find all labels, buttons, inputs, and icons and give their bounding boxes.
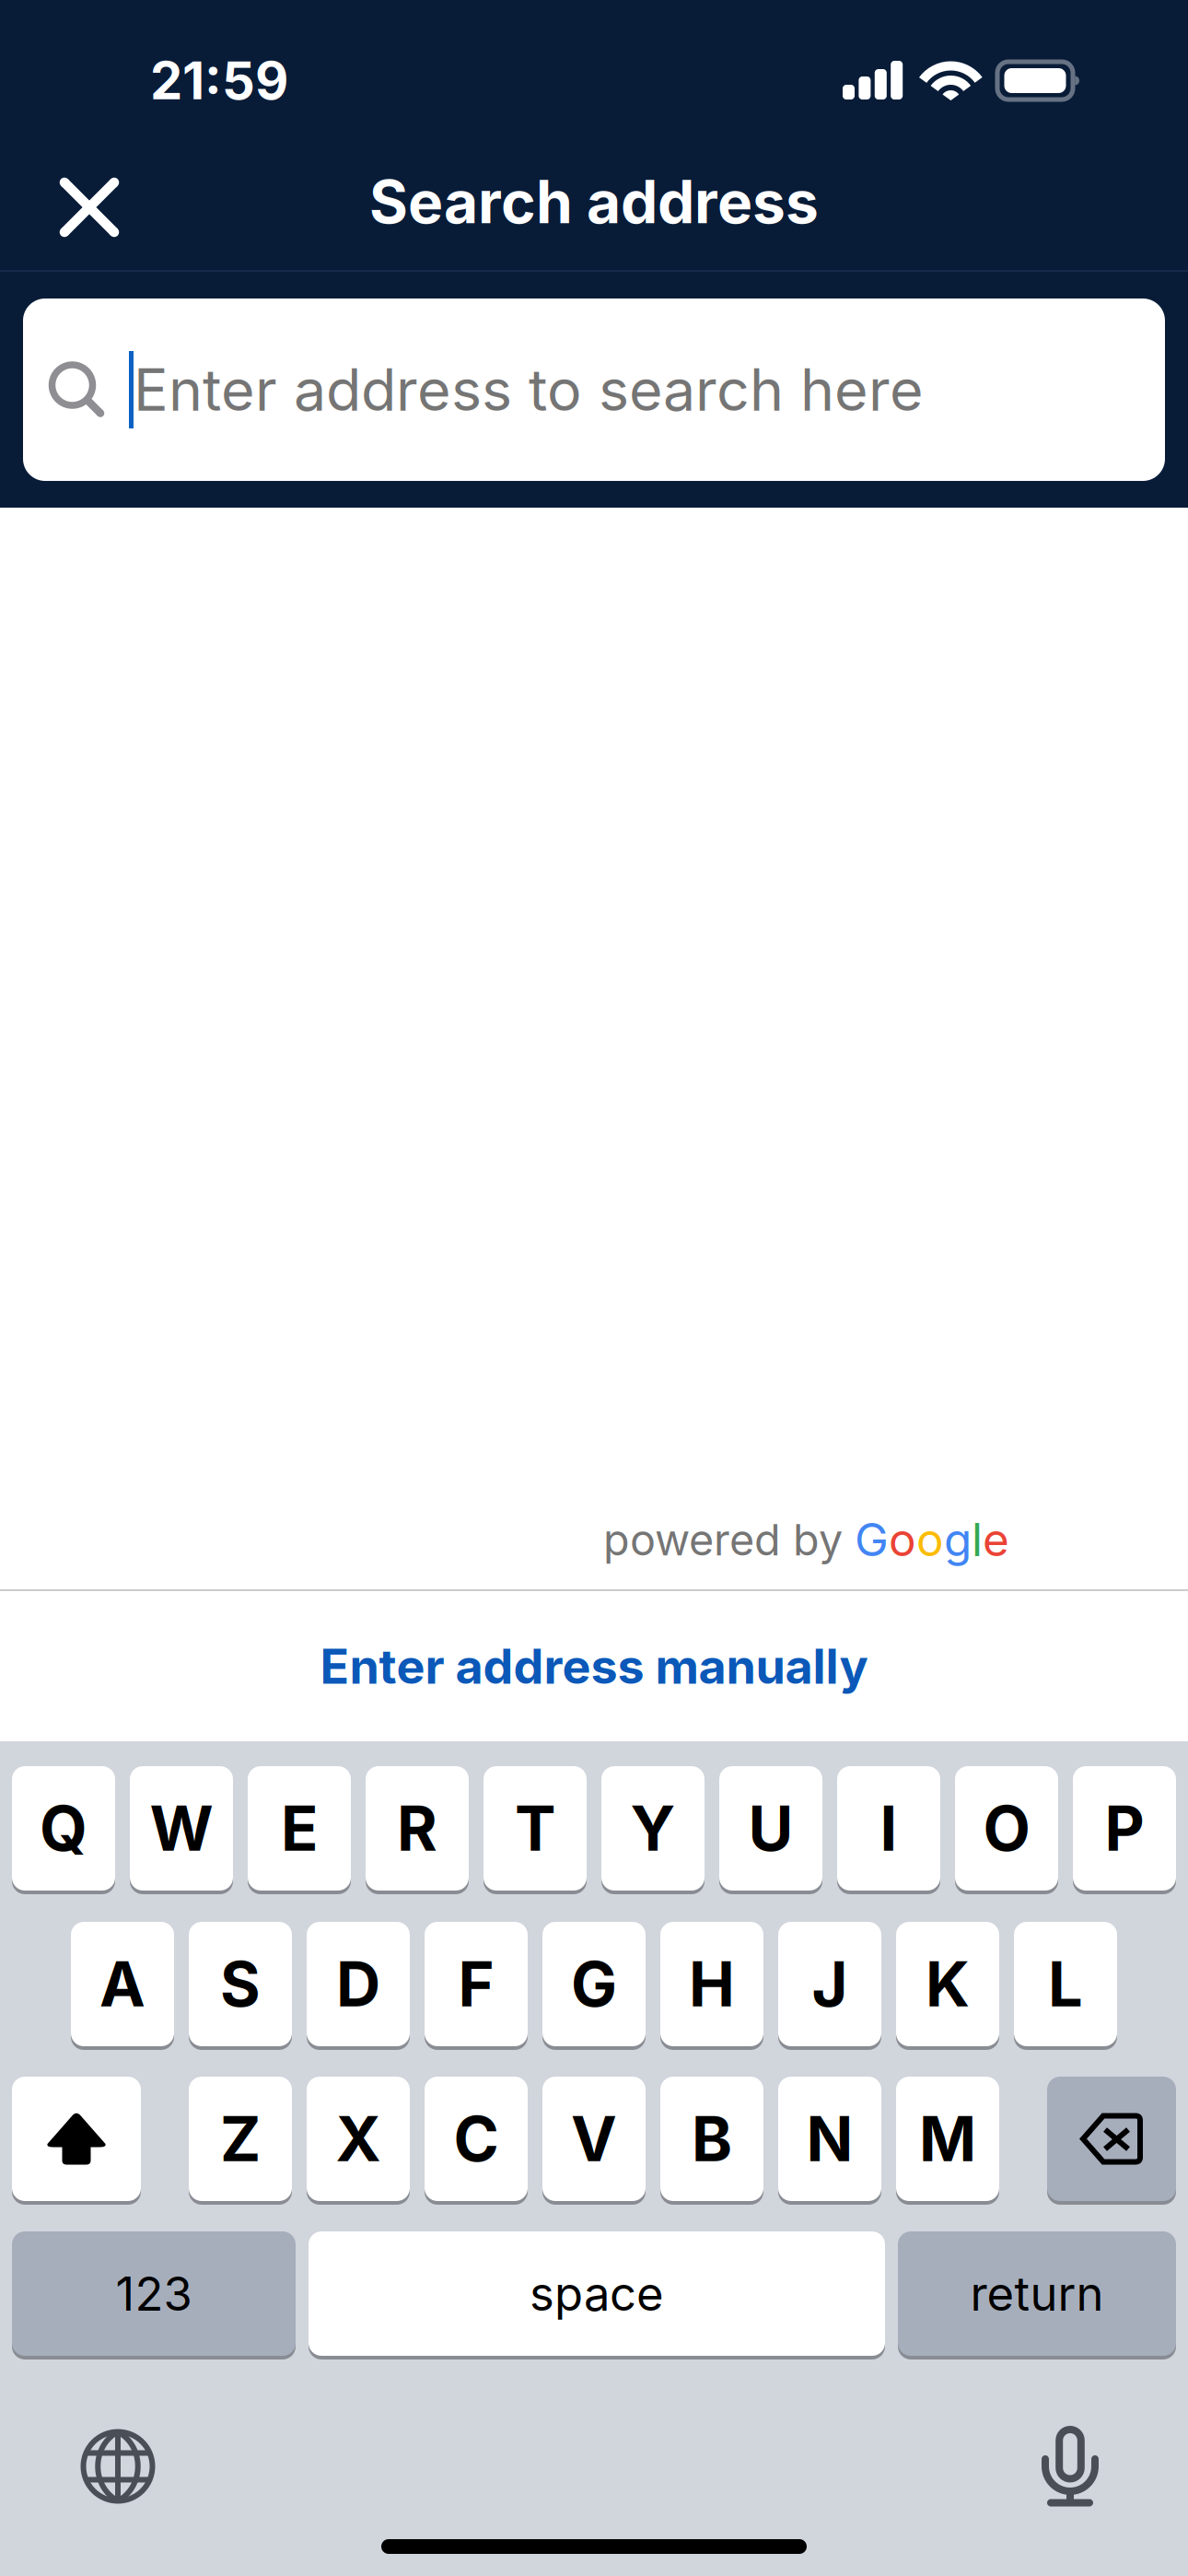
staticText: M [919, 2102, 976, 2176]
staticText: I [880, 1791, 897, 1866]
staticText: V [571, 2102, 617, 2176]
staticText: Y [630, 1791, 676, 1866]
button[interactable]: K [896, 1922, 999, 2046]
button[interactable]: W [130, 1766, 233, 1891]
staticText: S [220, 1947, 261, 2021]
button[interactable]: space [309, 2231, 885, 2356]
staticText: X [336, 2102, 381, 2176]
button[interactable]: Enter address manually [0, 1591, 1188, 1741]
staticText: H [689, 1947, 735, 2021]
staticText: B [692, 2102, 732, 2176]
button[interactable]: S [189, 1922, 292, 2046]
staticText: O [983, 1791, 1030, 1866]
button[interactable]: X [307, 2077, 410, 2201]
button[interactable]: T [483, 1766, 587, 1891]
button[interactable]: return [898, 2231, 1176, 2356]
button[interactable]: H [660, 1922, 763, 2046]
button[interactable]: J [778, 1922, 881, 2046]
button[interactable]: Delete [1047, 2077, 1176, 2201]
button[interactable]: Enter address to search here [23, 299, 1165, 481]
button[interactable]: Shift [12, 2077, 141, 2201]
staticText: Enter address manually [320, 1637, 868, 1695]
button[interactable]: R [366, 1766, 469, 1891]
button[interactable]: I [837, 1766, 940, 1891]
staticText: C [454, 2102, 499, 2176]
button[interactable]: P [1073, 1766, 1176, 1891]
staticText: Enter address to search here [134, 355, 924, 425]
staticText: powered by [603, 1514, 855, 1566]
button[interactable]: B [660, 2077, 763, 2201]
staticText: o [916, 1512, 944, 1567]
button[interactable]: 123 [12, 2231, 296, 2356]
staticText: return [970, 2265, 1104, 2322]
staticText: Z [220, 2102, 261, 2176]
button[interactable]: Close [32, 143, 143, 261]
button[interactable]: F [425, 1922, 528, 2046]
button[interactable]: V [542, 2077, 646, 2201]
staticText: N [806, 2102, 853, 2176]
staticText: P [1105, 1791, 1144, 1866]
staticText: o [889, 1512, 916, 1567]
staticText: g [944, 1512, 972, 1567]
button[interactable]: D [307, 1922, 410, 2046]
button[interactable]: G [542, 1922, 646, 2046]
button[interactable]: N [778, 2077, 881, 2201]
staticText: R [397, 1791, 437, 1866]
staticText: Search address [369, 166, 819, 237]
staticText: G [571, 1947, 617, 2021]
staticText: Q [40, 1791, 87, 1866]
button[interactable]: O [955, 1766, 1058, 1891]
staticText: l [972, 1512, 983, 1567]
staticText: D [336, 1947, 380, 2021]
staticText: 123 [116, 2265, 192, 2322]
button[interactable]: E [248, 1766, 351, 1891]
button[interactable]: L [1014, 1922, 1117, 2046]
button[interactable]: C [425, 2077, 528, 2201]
staticText: W [150, 1791, 213, 1866]
staticText: e [983, 1512, 1009, 1567]
staticText: L [1048, 1947, 1083, 2021]
button[interactable]: Q [12, 1766, 115, 1891]
button[interactable]: Z [189, 2077, 292, 2201]
button[interactable]: M [896, 2077, 999, 2201]
button[interactable]: U [719, 1766, 822, 1891]
staticText: space [530, 2265, 664, 2322]
button[interactable]: Next keyboard [80, 2429, 156, 2504]
button[interactable]: A [71, 1922, 174, 2046]
button[interactable]: Dictate [1042, 2426, 1099, 2507]
staticText: 21:59 [150, 49, 288, 112]
staticText: U [748, 1791, 793, 1866]
staticText: F [458, 1947, 494, 2021]
staticText: G [855, 1512, 889, 1567]
button[interactable]: Y [601, 1766, 705, 1891]
staticText: T [515, 1791, 555, 1866]
staticText: K [926, 1947, 970, 2021]
staticText: A [99, 1947, 146, 2021]
staticText: E [281, 1791, 318, 1866]
staticText: J [812, 1947, 848, 2021]
